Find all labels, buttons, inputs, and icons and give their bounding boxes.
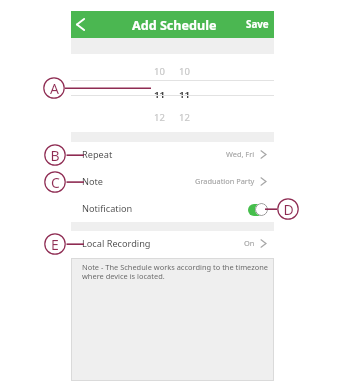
button[interactable]: Back: [71, 11, 90, 38]
button[interactable]: 12: [71, 110, 165, 124]
button[interactable]: Notification: [71, 196, 274, 222]
staticText: B: [50, 146, 60, 165]
staticText: D: [283, 200, 294, 219]
button[interactable]: 10: [71, 64, 165, 78]
staticText: Local Recording: [82, 237, 151, 250]
staticText: On: [244, 238, 255, 248]
staticText: 10: [179, 65, 190, 78]
staticText: 11: [154, 88, 165, 101]
staticText: Note - The Schedule works according to t…: [82, 262, 269, 281]
staticText: Add Schedule: [132, 17, 217, 34]
staticText: C: [51, 173, 60, 192]
button[interactable]: 11: [71, 87, 165, 101]
button[interactable]: 12: [179, 110, 274, 124]
button[interactable]: Save: [246, 18, 269, 31]
button[interactable]: Local Recording: [71, 231, 274, 257]
button[interactable]: 10: [179, 64, 274, 78]
staticText: 11: [179, 88, 190, 101]
staticText: 12: [154, 111, 165, 124]
staticText: 12: [179, 111, 190, 124]
staticText: Save: [246, 18, 269, 31]
staticText: Wed, Fri: [226, 149, 255, 159]
staticText: A: [50, 79, 59, 98]
staticText: Notification: [82, 202, 133, 215]
staticText: 10: [154, 65, 165, 78]
staticText: Repeat: [82, 148, 113, 161]
button[interactable]: Note: [71, 169, 274, 195]
button[interactable]: Repeat: [71, 142, 274, 168]
staticText: Graduation Party: [195, 176, 255, 186]
button[interactable]: 11: [179, 87, 274, 101]
button[interactable]: Notification toggle: [248, 203, 268, 216]
staticText: E: [51, 235, 59, 254]
staticText: Note: [82, 175, 104, 188]
